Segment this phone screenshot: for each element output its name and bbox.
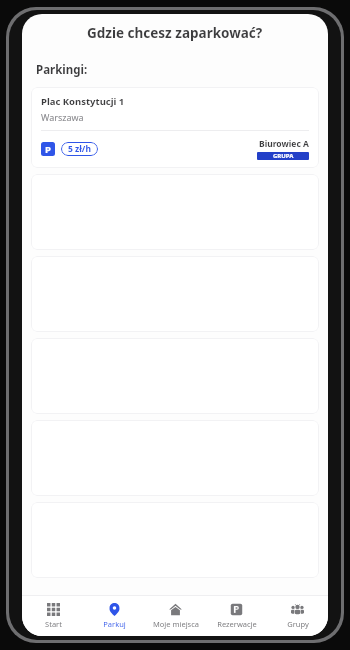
staticText: Parkuj bbox=[103, 619, 126, 629]
staticText: Parkingi: bbox=[36, 62, 88, 78]
staticText: 5 zł/h bbox=[68, 143, 91, 155]
staticText: Rezerwacje bbox=[217, 619, 257, 629]
staticText: Plac Konstytucji 1 bbox=[41, 95, 125, 108]
staticText: P bbox=[45, 143, 51, 156]
staticText: Biurowiec A bbox=[259, 138, 309, 150]
button[interactable]: Plac Konstytucji 1 bbox=[31, 87, 319, 168]
staticText: GRUPA bbox=[273, 152, 294, 160]
button[interactable]: Rezerwacje bbox=[206, 596, 267, 636]
staticText: Gdzie chcesz zaparkować? bbox=[87, 24, 263, 42]
staticText: Start bbox=[45, 619, 62, 629]
button[interactable]: Parkuj bbox=[84, 596, 145, 636]
staticText: Grupy bbox=[287, 619, 309, 629]
button[interactable]: Grupy bbox=[267, 596, 328, 636]
staticText: Warszawa bbox=[41, 111, 84, 123]
staticText: Moje miejsca bbox=[153, 619, 199, 629]
button[interactable]: Start bbox=[22, 596, 84, 636]
button[interactable]: Moje miejsca bbox=[145, 596, 206, 636]
